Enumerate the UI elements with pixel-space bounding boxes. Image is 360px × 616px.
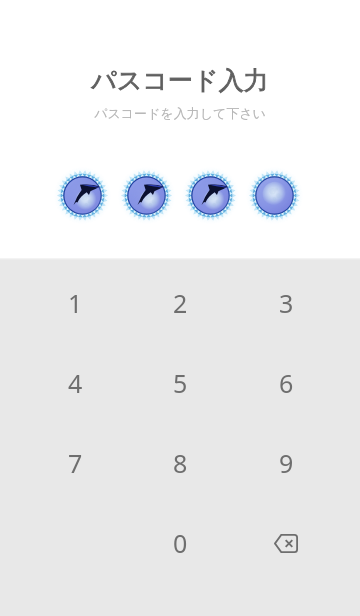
button[interactable]: 6	[246, 347, 326, 419]
staticText: 7	[68, 446, 83, 480]
button[interactable]: 2	[140, 267, 220, 339]
staticText: 8	[173, 446, 188, 480]
button[interactable]: 1	[35, 267, 115, 339]
staticText: 9	[279, 446, 294, 480]
staticText: 2	[173, 286, 188, 320]
staticText: 3	[279, 286, 294, 320]
staticText: パスコード入力	[91, 65, 269, 96]
staticText: 4	[68, 366, 83, 400]
staticText: 0	[173, 526, 188, 560]
button[interactable]: 0	[140, 507, 220, 579]
staticText: 6	[279, 366, 294, 400]
button[interactable]: 9	[246, 427, 326, 499]
button[interactable]: 5	[140, 347, 220, 419]
button[interactable]: 7	[35, 427, 115, 499]
staticText: 5	[173, 366, 188, 400]
staticText: パスコードを入力して下さい	[94, 105, 266, 121]
staticText: パスコード入力	[91, 65, 269, 96]
button[interactable]: Delete	[246, 507, 326, 579]
button[interactable]: 4	[35, 347, 115, 419]
button[interactable]: 8	[140, 427, 220, 499]
button[interactable]: 3	[246, 267, 326, 339]
staticText: 1	[68, 286, 83, 320]
